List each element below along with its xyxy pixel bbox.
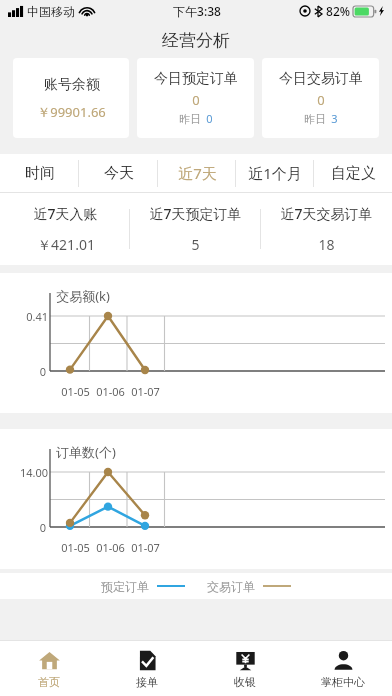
staticText: ￥421.01 [37,235,95,254]
staticText: 时间 [25,164,55,183]
staticText: 01-07 [131,384,160,399]
staticText: 82% [326,3,350,19]
button[interactable]: 掌柜中心 [294,641,392,696]
button[interactable]: 近1个月 [236,154,314,192]
staticText: 掌柜中心 [321,675,365,689]
staticText: 近1个月 [248,163,302,183]
staticText: 昨日 [304,112,326,126]
staticText: ￥99901.66 [37,103,106,121]
button[interactable]: 接单 [98,641,196,696]
staticText: 3 [331,111,338,126]
staticText: 0 [192,91,200,109]
staticText: 下午3:38 [173,3,221,19]
staticText: 交易订单 [207,579,255,594]
button[interactable]: 今日交易订单 [262,58,379,138]
staticText: 收银 [234,675,256,689]
staticText: 0 [0,364,46,379]
staticText: 近7天 [178,163,217,183]
staticText: 自定义 [331,164,376,183]
button[interactable]: 自定义 [314,154,392,192]
staticText: 14.00 [0,465,48,480]
staticText: 今日交易订单 [279,70,363,88]
staticText: 0 [317,91,325,109]
staticText: 订单数(个) [56,443,116,461]
staticText: 18 [318,235,335,254]
staticText: 近7天预定订单 [149,204,242,223]
button[interactable]: 今日预定订单 [137,58,254,138]
staticText: 今天 [104,164,134,183]
staticText: 昨日 [179,112,201,126]
staticText: 01-07 [131,540,160,555]
staticText: 近7天交易订单 [280,204,373,223]
staticText: 今日预定订单 [154,70,238,88]
staticText: 账号余额 [44,76,100,94]
staticText: 0 [0,520,46,535]
button[interactable]: 今天 [79,154,158,192]
button[interactable]: 时间 [0,154,79,192]
staticText: 01-05 [61,384,90,399]
staticText: 预定订单 [101,579,149,594]
button[interactable]: 账号余额 [13,58,129,138]
button[interactable]: 近7天 [158,154,236,192]
staticText: 0 [206,111,213,126]
button[interactable]: 收银 [196,641,294,696]
staticText: 5 [191,235,200,254]
staticText: 中国移动 [27,4,75,19]
staticText: 01-06 [96,540,125,555]
staticText: 近7天入账 [33,204,98,223]
staticText: 交易额(k) [56,287,110,305]
staticText: 经营分析 [162,30,230,51]
button[interactable]: 首页 [0,641,98,696]
staticText: 0.41 [0,309,48,324]
staticText: 01-05 [61,540,90,555]
staticText: 首页 [38,675,60,689]
staticText: 01-06 [96,384,125,399]
staticText: 接单 [136,675,158,689]
